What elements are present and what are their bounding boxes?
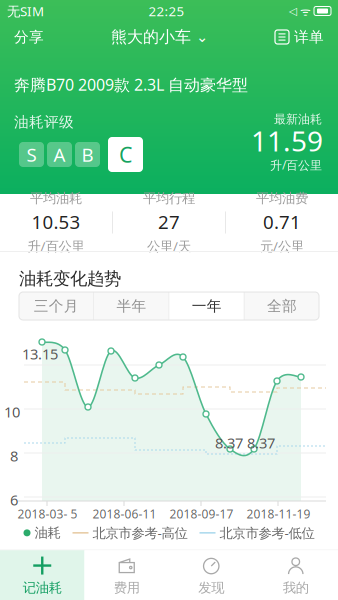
staticText: 2018-06-11 [92, 506, 156, 522]
button[interactable]: 发现 [169, 550, 253, 600]
staticText: 油耗 [34, 525, 60, 541]
staticText: 升/百公里 [270, 157, 322, 173]
button[interactable]: 记油耗 [0, 550, 84, 600]
button[interactable]: 费用 [84, 550, 169, 600]
staticText: 北京市参考-低位 [219, 524, 314, 542]
staticText: 平均油费 [256, 190, 308, 206]
staticText: 27 [158, 209, 180, 234]
button[interactable]: 三个月 [19, 292, 93, 320]
staticText: 最新油耗 [274, 112, 322, 127]
staticText: 我的 [283, 580, 309, 596]
button[interactable]: 详单 [261, 21, 338, 53]
staticText: 熊大的小车 [111, 27, 191, 47]
staticText: 2018-03- 5 [17, 506, 77, 522]
button[interactable]: 半年 [94, 292, 168, 320]
staticText: 0.71 [263, 209, 301, 234]
staticText: ⌄ [196, 29, 208, 45]
button[interactable]: 分享 [0, 21, 58, 53]
staticText: 发现 [198, 580, 224, 596]
staticText: 奔腾B70 2009款 2.3L 自动豪华型 [14, 74, 248, 95]
staticText: S [26, 142, 36, 167]
staticText: 8 [10, 446, 18, 465]
staticText: ◁ [289, 5, 297, 17]
staticText: B [81, 142, 93, 167]
staticText: 油耗评级 [14, 113, 74, 131]
staticText: 8.37 8.37 [215, 433, 275, 452]
staticText: 平均行程 [143, 190, 195, 206]
staticText: 半年 [116, 297, 146, 315]
staticText: 2018-11-19 [246, 506, 310, 522]
button[interactable]: 我的 [253, 550, 338, 600]
staticText: 元/公里 [260, 237, 304, 255]
button[interactable]: 熊大的小车 [111, 21, 208, 53]
staticText: 记油耗 [23, 580, 62, 596]
staticText: 13.15 [22, 344, 58, 363]
staticText: 一年 [192, 297, 222, 315]
staticText: 平均油耗 [30, 190, 82, 206]
staticText: 北京市参考-高位 [92, 524, 187, 542]
staticText: 6 [10, 490, 18, 509]
staticText: 10 [4, 402, 20, 421]
staticText: 全部 [267, 297, 297, 315]
staticText: 油耗变化趋势 [19, 268, 121, 289]
button[interactable]: 全部 [245, 292, 319, 320]
staticText: 11.59 [251, 122, 323, 159]
staticText: 费用 [114, 580, 140, 596]
staticText: 公里/天 [147, 237, 191, 255]
staticText: 详单 [294, 28, 324, 46]
staticText: 2018-09-17 [169, 506, 233, 522]
staticText: 三个月 [34, 297, 79, 315]
staticText: 升/百公里 [27, 237, 84, 255]
staticText: 分享 [14, 28, 44, 46]
button[interactable]: 一年 [169, 292, 244, 320]
staticText: C [119, 140, 132, 169]
staticText: A [53, 142, 65, 167]
staticText: 22:25 [148, 2, 184, 20]
staticText: ᯤ [297, 3, 314, 19]
staticText: 10.53 [31, 209, 80, 234]
staticText: 无SIM [7, 2, 44, 20]
